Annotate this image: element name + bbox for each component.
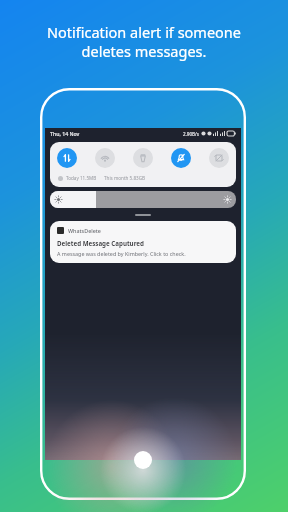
- button[interactable]: WhatsDelete: [50, 221, 236, 263]
- button[interactable]: Wi-Fi: [95, 148, 115, 168]
- button[interactable]: Silent mode: [171, 148, 191, 168]
- staticText: Notification alert if someone deletes me…: [0, 22, 288, 62]
- staticText: WhatsDelete: [68, 227, 101, 234]
- staticText: 2.90B/s: [183, 131, 200, 137]
- button[interactable]: Mobile data: [57, 148, 77, 168]
- button[interactable]: Flashlight: [133, 148, 153, 168]
- staticText: A message was deleted by Kimberly. Click…: [57, 250, 186, 257]
- button[interactable]: Auto rotate: [209, 148, 229, 168]
- staticText: Thu, 14 Nov: [50, 130, 80, 137]
- staticText: This month 5.83GB: [104, 175, 146, 181]
- staticText: Deleted Message Caputured: [57, 239, 144, 247]
- staticText: Today 11.5MB: [66, 175, 97, 181]
- button[interactable]: Brightness: [50, 191, 236, 208]
